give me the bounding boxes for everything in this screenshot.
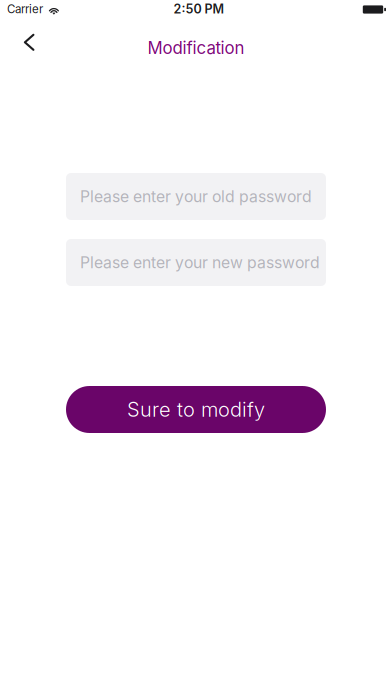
staticText: 2:50 PM (173, 1, 224, 17)
staticText: Modification (147, 38, 244, 58)
button[interactable]: Please enter your old password (66, 173, 326, 220)
button[interactable]: Sure to modify (66, 386, 326, 433)
button[interactable]: Please enter your new password (66, 239, 326, 286)
button[interactable]: Back (7, 20, 51, 64)
staticText: Sure to modify (127, 397, 265, 422)
staticText: Please enter your new password (80, 253, 320, 272)
staticText: Please enter your old password (80, 187, 312, 206)
staticText: Carrier (7, 2, 43, 16)
